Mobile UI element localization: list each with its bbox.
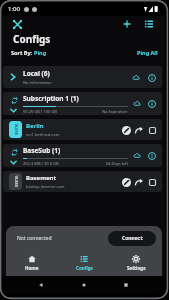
button[interactable]: Ping All [137,49,158,56]
staticText: No Expiration [102,109,128,114]
staticText: Not connected [17,235,52,242]
button[interactable]: Update subscription [3,92,162,115]
button[interactable]: Local (6) [3,66,162,88]
staticText: Ping [34,49,47,56]
staticText: Ping All [137,49,158,56]
button[interactable]: Share [134,125,144,135]
button[interactable]: Copy [147,125,157,135]
staticText: BaseSub (1) [23,146,61,155]
staticText: 1:00 [8,5,20,13]
staticText: No information [23,80,52,85]
staticText: srv1.berlinsd.com [26,132,60,137]
button[interactable]: Ping [131,150,142,161]
staticText: Configs [76,265,93,271]
button[interactable]: Update subscription [3,144,162,167]
button[interactable]: Configs [58,250,110,276]
staticText: VLESS [13,175,18,187]
button[interactable]: Copy [147,177,157,187]
button[interactable]: Add config [119,16,135,32]
staticText: Local (6) [23,69,50,78]
button[interactable]: Edit [121,177,131,187]
staticText: Home [25,265,39,271]
staticText: 50.25 GB / 100 GB [23,109,57,114]
staticText: VLESS [13,123,18,135]
staticText: Sort By: [11,49,34,56]
button[interactable]: Home [6,250,58,276]
button[interactable]: VLESS [3,119,162,140]
staticText: Subscription 1 (1) [23,94,79,103]
staticText: Berlin [26,122,44,130]
staticText: Connect [122,235,143,242]
button[interactable]: Info [146,150,157,161]
button[interactable]: Update subscription [10,148,18,156]
staticText: Basement [26,174,57,182]
staticText: Configs [13,32,51,46]
button[interactable]: Ping [131,98,142,109]
staticText: Settings [127,265,146,271]
button[interactable]: VLESS [3,171,162,192]
button[interactable]: Ping [130,72,141,83]
staticText: backup.linserve.com [26,184,65,189]
button[interactable]: Info [146,98,157,109]
button[interactable]: Info [146,72,157,83]
button[interactable]: Connect [108,231,156,246]
button[interactable]: Settings [110,250,162,276]
button[interactable]: Update subscription [10,96,18,104]
button[interactable]: Share [134,177,144,187]
staticText: 54 Days left [106,161,128,166]
button[interactable]: Menu [141,16,157,32]
button[interactable]: Edit [121,125,131,135]
staticText: 252.3 MB / 30.0 GB [23,161,59,166]
